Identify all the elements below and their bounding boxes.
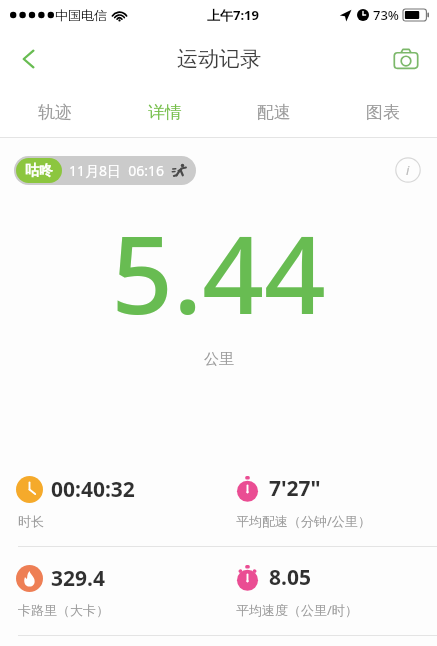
staticText: 329.4 — [51, 564, 105, 593]
button[interactable]: 329.4 — [0, 547, 218, 635]
button[interactable]: 7'27" — [218, 458, 437, 546]
button[interactable]: 8.05 — [218, 547, 437, 635]
staticText: 平均速度（公里/时） — [236, 601, 358, 619]
staticText: i — [406, 161, 410, 179]
staticText: 时长 — [18, 513, 44, 529]
staticText: 00:40:32 — [51, 475, 135, 504]
button[interactable]: 00:40:32 — [0, 458, 218, 546]
staticText: 中国电信 — [55, 7, 107, 23]
staticText: 8.05 — [269, 563, 311, 592]
button[interactable]: 轨迹 — [0, 88, 110, 137]
staticText: 咕咚 — [25, 162, 53, 180]
button[interactable]: Camera — [383, 36, 429, 82]
staticText: 平均配速（分钟/公里） — [236, 512, 371, 530]
button[interactable]: Back — [6, 36, 52, 82]
staticText: 公里 — [204, 350, 234, 369]
staticText: 卡路里（大卡） — [18, 602, 109, 618]
staticText: 73% — [373, 6, 399, 24]
button[interactable]: Info — [393, 155, 423, 185]
staticText: 轨迹 — [38, 102, 72, 123]
staticText: 图表 — [366, 102, 400, 123]
staticText: 7'27" — [269, 474, 321, 503]
staticText: 11月8日 06:16 — [69, 161, 165, 180]
staticText: 配速 — [257, 102, 291, 123]
staticText: 5.44 — [111, 199, 326, 346]
staticText: 运动记录 — [177, 46, 261, 72]
button[interactable]: 咕咚 — [14, 156, 196, 185]
button[interactable]: 详情 — [110, 88, 219, 137]
staticText: 上午7:19 — [207, 6, 259, 24]
button[interactable]: 图表 — [328, 88, 437, 137]
button[interactable]: 配速 — [219, 88, 328, 137]
staticText: 详情 — [148, 102, 182, 123]
